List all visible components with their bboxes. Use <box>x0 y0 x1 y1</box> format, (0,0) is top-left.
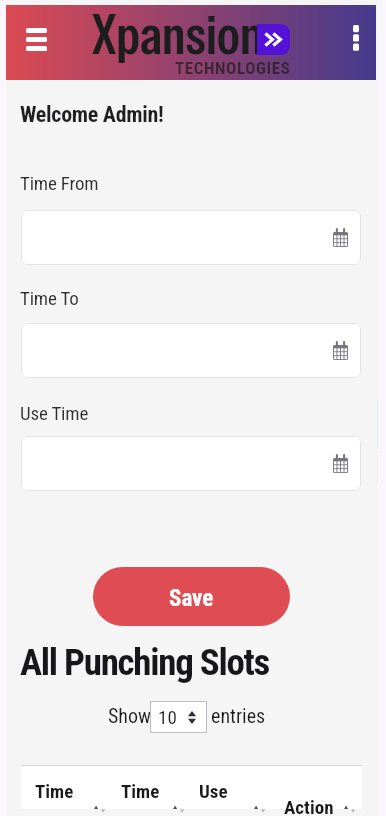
staticText: TECHNOLOGIES <box>175 58 291 78</box>
staticText: Time To <box>20 287 79 309</box>
staticText: All Punching Slots <box>20 641 270 684</box>
other: Pick date <box>333 341 348 360</box>
button[interactable]: Pick date <box>21 436 361 491</box>
button[interactable]: Time <box>121 780 160 802</box>
staticText: Save <box>169 585 214 612</box>
button[interactable]: More options <box>336 18 376 58</box>
button[interactable]: Menu <box>16 19 57 60</box>
button[interactable]: Pick date <box>21 323 361 378</box>
staticText: entries <box>211 704 266 727</box>
button[interactable]: Save <box>93 567 290 626</box>
button[interactable]: Action <box>284 796 334 816</box>
staticText: Welcome Admin! <box>20 102 164 128</box>
other: Pick date <box>333 228 348 247</box>
staticText: Use Time <box>20 402 89 424</box>
button[interactable]: Pick date <box>21 210 361 265</box>
other: Pick date <box>333 454 348 473</box>
staticText: Show <box>108 704 152 727</box>
button[interactable]: Time <box>35 780 74 802</box>
button[interactable]: Use <box>199 780 228 802</box>
button[interactable]: 10 <box>150 701 207 733</box>
staticText: 10 <box>158 706 177 728</box>
staticText: Xpansion <box>92 0 264 71</box>
staticText: Time From <box>20 172 99 194</box>
